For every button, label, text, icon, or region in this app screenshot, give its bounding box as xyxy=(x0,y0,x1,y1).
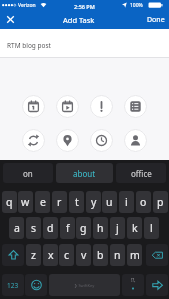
button[interactable]: ❯ SwiftKey xyxy=(49,274,120,296)
button[interactable]: l xyxy=(144,217,159,239)
button[interactable]: x xyxy=(43,244,58,266)
button[interactable]: r xyxy=(52,191,67,213)
button[interactable]: Done xyxy=(142,10,169,29)
staticText: y xyxy=(91,195,97,209)
button[interactable]: c xyxy=(59,244,74,266)
staticText: p xyxy=(157,195,164,209)
button[interactable]: y xyxy=(86,191,101,213)
staticText: u xyxy=(106,195,113,209)
staticText: n xyxy=(114,248,121,262)
button[interactable] xyxy=(90,95,113,118)
button[interactable]: t xyxy=(69,191,84,213)
button[interactable] xyxy=(56,129,79,152)
button[interactable]: j xyxy=(110,217,125,239)
button[interactable] xyxy=(124,95,147,118)
staticText: d xyxy=(47,221,54,235)
button[interactable]: m xyxy=(127,244,142,266)
staticText: 123 xyxy=(7,281,19,290)
staticText: m xyxy=(130,248,140,262)
staticText: k xyxy=(132,221,138,235)
button[interactable]: s xyxy=(26,217,41,239)
button[interactable]: on xyxy=(3,163,53,183)
staticText: s xyxy=(31,221,37,235)
button[interactable] xyxy=(2,244,24,266)
staticText: on xyxy=(23,168,33,179)
staticText: 2:56 PM xyxy=(74,3,95,10)
button[interactable] xyxy=(146,244,168,266)
button[interactable] xyxy=(22,95,45,118)
button[interactable] xyxy=(56,95,79,118)
button[interactable]: n xyxy=(110,244,125,266)
staticText: z xyxy=(31,248,36,262)
button[interactable]: v xyxy=(76,244,91,266)
staticText: Add Task xyxy=(63,15,95,25)
button[interactable]: q xyxy=(2,191,17,213)
button[interactable]: d xyxy=(43,217,58,239)
button[interactable]: z xyxy=(26,244,41,266)
staticText: w xyxy=(21,195,30,209)
button[interactable] xyxy=(124,129,147,152)
staticText: v xyxy=(81,248,87,262)
staticText: c xyxy=(64,248,70,262)
staticText: b xyxy=(97,248,104,262)
staticText: office xyxy=(131,168,152,179)
button[interactable]: 123 xyxy=(2,274,24,296)
button[interactable] xyxy=(22,129,45,152)
button[interactable]: office xyxy=(116,163,166,183)
staticText: f xyxy=(66,221,70,235)
button[interactable]: g xyxy=(76,217,91,239)
button[interactable]: u xyxy=(102,191,117,213)
staticText: i xyxy=(125,195,128,209)
staticText: about xyxy=(73,168,96,179)
staticText: q xyxy=(6,195,13,209)
staticText: t xyxy=(75,195,79,209)
staticText: RTM blog post xyxy=(7,41,51,50)
button[interactable]: b xyxy=(93,244,108,266)
staticText: r xyxy=(57,195,62,209)
button[interactable]: k xyxy=(127,217,142,239)
button[interactable]: a xyxy=(9,217,24,239)
button[interactable]: about xyxy=(56,163,113,183)
staticText: o xyxy=(140,195,147,209)
staticText: a xyxy=(14,221,20,235)
staticText: l xyxy=(150,221,153,235)
staticText: ❯ SwiftKey xyxy=(74,283,95,288)
button[interactable] xyxy=(25,274,47,296)
staticText: Done xyxy=(147,15,165,25)
button[interactable]: p xyxy=(153,191,168,213)
staticText: g xyxy=(80,221,87,235)
button[interactable] xyxy=(90,129,113,152)
button[interactable]: !?, xyxy=(122,274,144,296)
staticText: x xyxy=(48,248,54,262)
staticText: !?, xyxy=(131,277,136,283)
button[interactable]: o xyxy=(136,191,151,213)
staticText: h xyxy=(97,221,104,235)
button[interactable]: i xyxy=(119,191,134,213)
button[interactable] xyxy=(4,13,17,26)
staticText: Verizon xyxy=(18,2,36,9)
staticText: 100% xyxy=(130,2,143,9)
button[interactable]: w xyxy=(18,191,33,213)
staticText: j xyxy=(116,221,119,235)
button[interactable] xyxy=(146,274,168,296)
button[interactable]: f xyxy=(60,217,75,239)
button[interactable]: h xyxy=(93,217,108,239)
button[interactable]: e xyxy=(35,191,50,213)
staticText: e xyxy=(40,195,46,209)
